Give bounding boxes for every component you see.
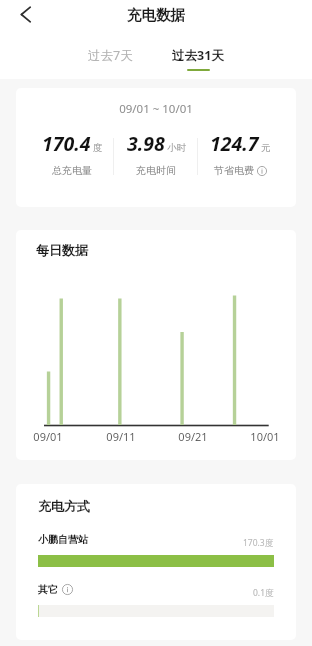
staticText: 小时: [167, 142, 186, 154]
staticText: 3.98: [127, 130, 165, 157]
staticText: 09/21: [169, 429, 217, 444]
button[interactable]: 过去7天: [82, 30, 138, 71]
staticText: 充电时间: [136, 164, 176, 177]
staticText: 124.7: [210, 130, 259, 157]
button[interactable]: 过去31天: [170, 30, 226, 71]
staticText: 每日数据: [36, 242, 88, 258]
staticText: 10/01: [241, 429, 289, 444]
staticText: 09/11: [97, 429, 145, 444]
staticText: 充电方式: [38, 498, 90, 514]
staticText: 09/01 ~ 10/01: [16, 101, 296, 117]
staticText: 09/01: [24, 429, 72, 444]
staticText: 节省电费: [214, 164, 254, 177]
button[interactable]: Back: [12, 1, 38, 27]
staticText: 过去7天: [88, 47, 133, 64]
staticText: 过去31天: [172, 47, 224, 64]
staticText: 总充电量: [52, 164, 92, 177]
staticText: 充电数据: [127, 6, 185, 24]
staticText: 170.4: [42, 130, 91, 157]
staticText: 0.1度: [253, 587, 274, 599]
staticText: 元: [261, 142, 271, 154]
staticText: 其它: [38, 583, 58, 596]
staticText: 小鹏自营站: [38, 533, 88, 546]
staticText: 度: [93, 142, 103, 154]
staticText: 170.3度: [243, 537, 274, 549]
